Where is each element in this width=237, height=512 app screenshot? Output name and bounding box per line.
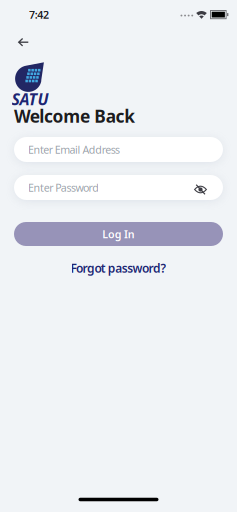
staticText: SATU: [11, 88, 48, 110]
button[interactable]: Log In: [14, 222, 223, 246]
button[interactable]: Show password: [194, 182, 223, 192]
button[interactable]: Forgot password?: [71, 260, 166, 276]
staticText: 7:42: [29, 7, 49, 22]
staticText: Log In: [102, 227, 135, 241]
staticText: Enter Password: [28, 180, 99, 195]
staticText: Welcome Back: [14, 104, 135, 127]
button[interactable]: Enter Email Address: [14, 137, 223, 162]
staticText: Forgot password?: [71, 260, 166, 276]
button[interactable]: Enter Password: [14, 175, 223, 200]
button[interactable]: Back: [12, 32, 35, 53]
staticText: Enter Email Address: [28, 142, 120, 157]
